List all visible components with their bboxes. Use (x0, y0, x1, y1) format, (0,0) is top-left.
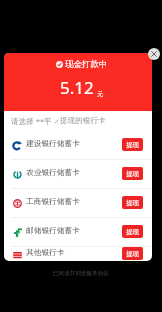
staticText: 其他银行卡 (26, 248, 65, 258)
staticText: 提现 (126, 170, 139, 178)
staticText: 5.12 (60, 76, 94, 99)
button[interactable]: 邮储银行储蓄卡 (4, 218, 152, 246)
staticText: 建设银行储蓄卡 (26, 139, 80, 149)
button[interactable]: 提现 (122, 247, 143, 260)
staticText: 农业银行储蓄卡 (26, 168, 80, 178)
button[interactable]: 提现 (122, 196, 143, 209)
staticText: 邮储银行储蓄卡 (26, 226, 80, 236)
staticText: 元 (97, 90, 103, 98)
staticText: 提现 (126, 228, 139, 236)
staticText: 提现 (126, 199, 139, 207)
button[interactable]: 建设银行储蓄卡 (4, 131, 152, 159)
staticText: 已阅读并同意服务协议 (53, 270, 109, 277)
staticText: 提现的银行卡 (60, 116, 106, 126)
button[interactable]: 提现 (122, 225, 143, 238)
staticText: 请选择 **平 (11, 116, 52, 126)
staticText: 工商银行储蓄卡 (26, 197, 80, 207)
staticText: 提现 (126, 250, 139, 258)
button[interactable]: 农业银行储蓄卡 (4, 160, 152, 188)
button[interactable]: 其他银行卡 (4, 247, 152, 261)
button[interactable]: 工商银行储蓄卡 (4, 189, 152, 217)
staticText: 提现 (126, 141, 139, 149)
button[interactable]: 提现 (122, 138, 143, 151)
staticText: 现金打款中 (65, 59, 108, 70)
button[interactable]: 提现 (122, 167, 143, 180)
button[interactable]: Close (148, 48, 160, 60)
button[interactable]: 已阅读并同意服务协议 (0, 266, 162, 280)
